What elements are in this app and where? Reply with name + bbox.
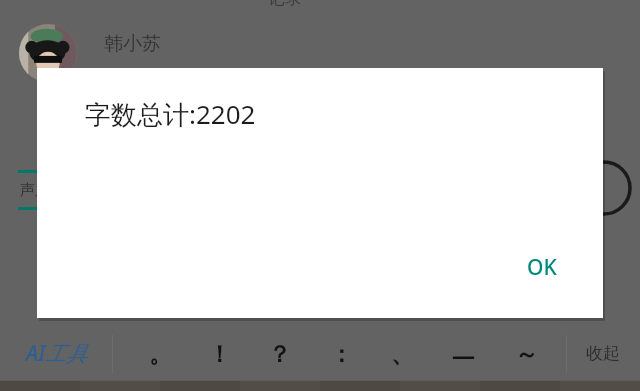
button[interactable]: Record	[576, 160, 632, 216]
staticText: 、	[391, 340, 414, 369]
staticText: 字数总计:2202	[85, 96, 256, 132]
staticText: ！	[208, 340, 231, 369]
button[interactable]: Insert ！	[195, 330, 243, 378]
staticText: —	[452, 339, 475, 370]
button[interactable]: 收起	[582, 337, 624, 370]
button[interactable]: Insert 。	[136, 330, 184, 378]
staticText: ：	[330, 340, 353, 369]
button[interactable]: Insert 、	[378, 330, 426, 378]
staticText: 收起	[586, 343, 620, 364]
button[interactable]: OK	[517, 247, 567, 288]
staticText: AI工具	[26, 339, 88, 368]
button[interactable]: Insert —	[439, 330, 487, 378]
staticText: 声之	[20, 181, 50, 200]
staticText: ？	[268, 340, 291, 369]
staticText: ～	[515, 340, 538, 369]
staticText: OK	[527, 253, 557, 282]
button[interactable]: AI工具	[22, 333, 92, 374]
button[interactable]: Insert ：	[317, 330, 365, 378]
staticText: 记录	[268, 0, 302, 9]
button[interactable]: Insert ～	[502, 330, 550, 378]
button[interactable]: Insert ？	[255, 330, 303, 378]
staticText: 。	[149, 340, 172, 369]
staticText: 韩小苏	[104, 32, 161, 56]
button[interactable]: Profile picture	[19, 24, 77, 82]
